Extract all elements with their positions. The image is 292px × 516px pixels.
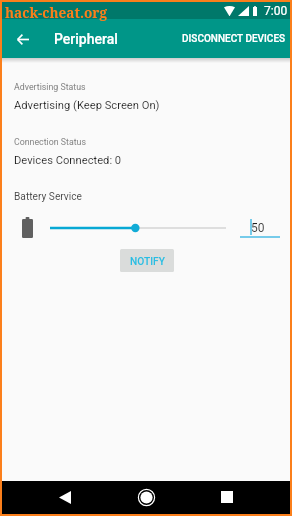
staticText: Advertising (Keep Screen On) [14,99,160,112]
staticText: 50 [251,221,265,235]
button[interactable]: Navigate up [9,25,37,53]
staticText: 7:00 [264,4,288,18]
staticText: NOTIFY [130,256,165,268]
button[interactable]: Battery level slider [44,218,232,238]
staticText: Peripheral [54,31,118,47]
staticText: DISCONNECT DEVICES [182,33,286,45]
staticText: Connection Status [14,137,86,147]
staticText: hack-cheat.org [5,3,107,22]
button[interactable]: Back [52,484,78,510]
staticText: Advertising Status [14,82,86,92]
button[interactable]: Home [133,484,159,510]
staticText: Battery Service [14,191,82,203]
button[interactable]: Recent apps [214,484,240,510]
staticText: Devices Connected: 0 [14,154,122,167]
button[interactable]: DISCONNECT DEVICES [176,24,290,54]
button[interactable]: Battery level value [238,218,278,234]
button[interactable]: NOTIFY [120,249,174,272]
